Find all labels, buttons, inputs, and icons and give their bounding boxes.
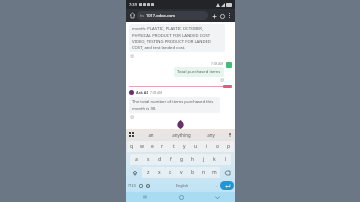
staticText: month: PLASTIC, PLASTIC OCTOBER, PHYSICA… [132,26,222,50]
button[interactable]: l [220,154,231,165]
button[interactable]: More options [226,12,233,19]
staticText: 1017.odoo.com [146,13,176,18]
button[interactable]: x [154,167,165,178]
button[interactable]: Backspace [221,167,233,178]
button[interactable]: any [196,129,226,140]
button[interactable]: Enter [220,181,234,190]
button[interactable]: y [179,141,190,152]
button[interactable]: Voice input [226,131,233,138]
staticText: English [176,183,189,188]
button[interactable]: a [130,154,142,165]
staticText: b [191,169,195,176]
button[interactable]: j [198,154,209,165]
button[interactable]: Keyboard menu [128,131,135,138]
staticText: m [212,169,217,176]
staticText: w [140,143,144,150]
button[interactable]: r [157,141,168,152]
staticText: p [227,143,231,150]
button[interactable]: Back [199,192,235,202]
button[interactable]: b [187,167,198,178]
staticText: j [203,156,205,163]
staticText: k [213,156,216,163]
button[interactable]: anything [166,129,196,140]
button[interactable]: Copy [220,78,225,83]
staticText: 7:38 AM [150,91,163,95]
button[interactable]: d [154,154,165,165]
button[interactable]: Recents [126,192,163,202]
button[interactable]: Copy [130,54,135,59]
button[interactable]: u [190,141,201,152]
staticText: Ask AI [136,90,148,95]
staticText: anything [172,132,191,138]
button[interactable]: month: PLASTIC, PLASTIC OCTOBER, PHYSICA… [129,24,225,52]
button[interactable]: t [168,141,179,152]
staticText: 7:39 [129,2,137,7]
button[interactable]: The total number of items purchased this… [129,97,220,113]
staticText: . [216,183,218,188]
button[interactable]: Tabs [218,12,226,20]
button[interactable]: n [198,167,209,178]
staticText: z [147,169,150,176]
staticText: o [216,143,220,150]
button[interactable]: Home [163,192,199,202]
staticText: s [147,156,150,163]
button[interactable]: w [137,141,147,152]
button[interactable]: an [135,129,166,140]
button[interactable]: k [209,154,220,165]
button[interactable]: p [223,141,234,152]
button[interactable]: Emoji [137,179,144,192]
staticText: g [180,156,184,163]
button[interactable]: e [147,141,157,152]
button[interactable]: h [187,154,198,165]
button[interactable]: Shift [128,167,141,178]
staticText: q [130,143,134,150]
button[interactable]: Total purchased items [174,67,224,77]
staticText: hs [140,13,144,18]
staticText: y [183,143,186,150]
button[interactable]: New tab [210,12,218,20]
button[interactable]: ?123 [127,179,137,192]
staticText: t [173,143,175,150]
button[interactable]: v [176,167,187,178]
staticText: e [151,143,154,150]
staticText: c [169,169,172,176]
staticText: l [225,156,227,163]
staticText: The total number of items purchased this… [132,99,217,111]
staticText: ?123 [128,183,136,188]
staticText: u [194,143,198,150]
button[interactable]: f [165,154,176,165]
staticText: any [207,132,215,138]
staticText: h [191,156,195,163]
button[interactable]: Home [128,11,137,20]
staticText: r [161,143,164,150]
staticText: d [158,156,162,163]
button[interactable]: o [212,141,223,152]
button[interactable]: . [214,179,220,192]
staticText: a [135,156,138,163]
button[interactable]: m [209,167,220,178]
staticText: Total purchased items [177,69,221,75]
button[interactable]: g [176,154,187,165]
button[interactable]: Switch language [144,179,151,192]
staticText: n [202,169,206,176]
button[interactable]: z [142,167,154,178]
staticText: x [158,169,161,176]
staticText: i [206,143,208,150]
button[interactable]: s [142,154,154,165]
button[interactable]: c [165,167,176,178]
button[interactable]: q [127,141,137,152]
button[interactable]: hs [137,11,208,20]
button[interactable]: Copy [130,115,135,120]
staticText: v [180,169,183,176]
staticText: an [148,132,154,138]
button[interactable]: English [152,180,213,191]
staticText: 7:38 AM [211,62,224,66]
button[interactable]: i [201,141,212,152]
staticText: f [170,156,172,163]
